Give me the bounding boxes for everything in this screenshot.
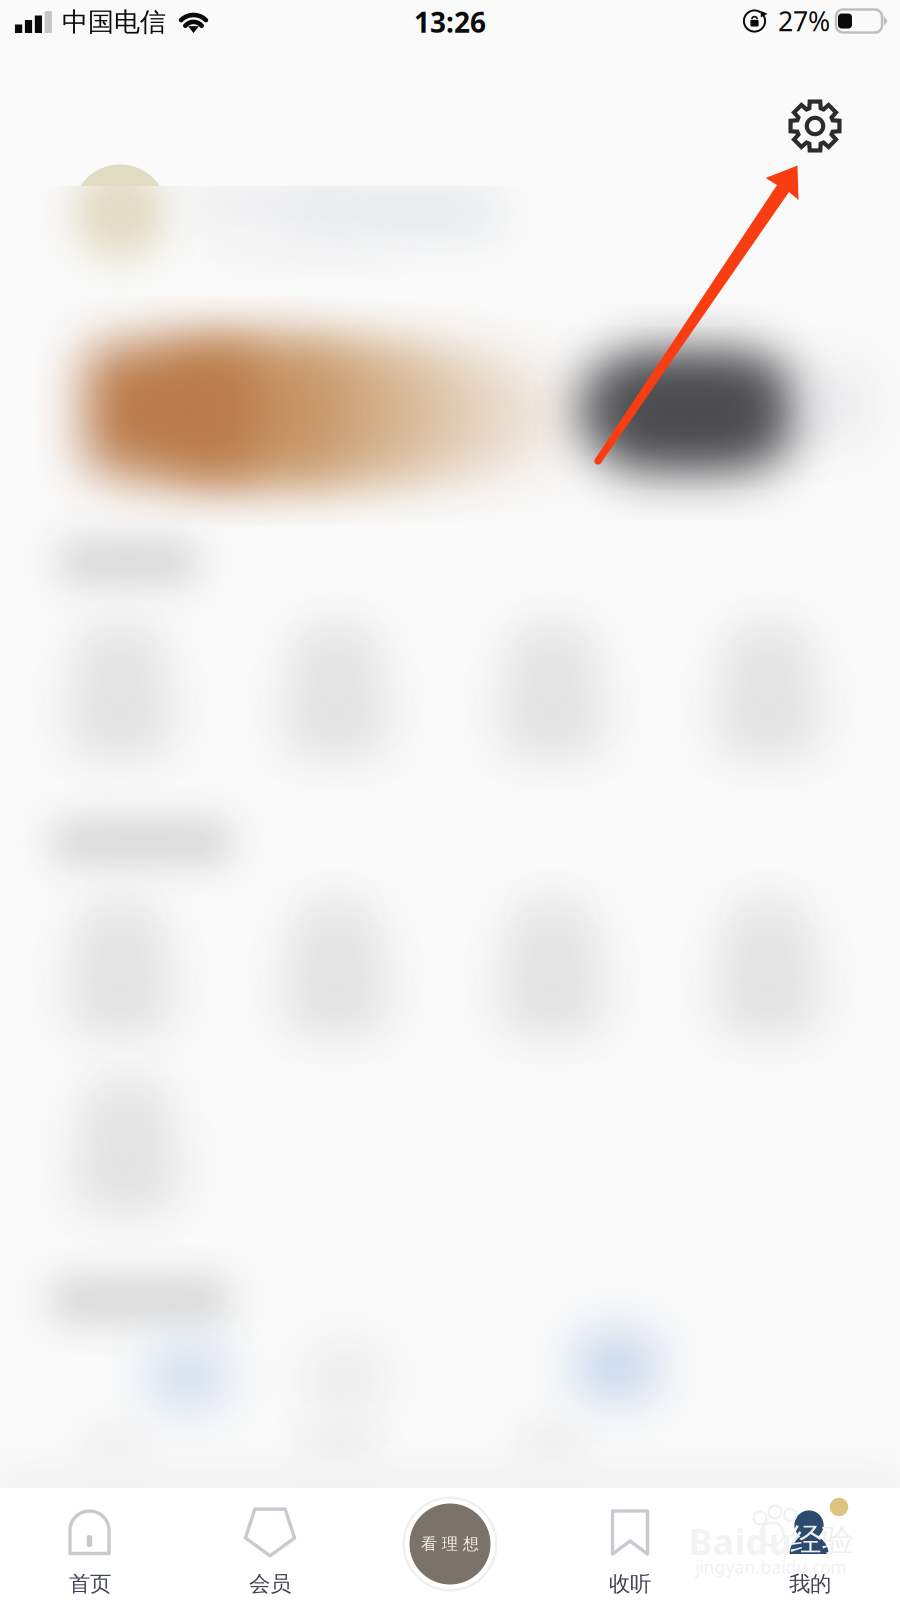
staticText: 13:26 [414, 3, 486, 41]
button[interactable]: 收听 [540, 1488, 720, 1600]
button[interactable]: 设置 [0, 0, 900, 1600]
staticText: 中国电信 [62, 6, 166, 38]
staticText: 27% [778, 3, 830, 39]
button[interactable]: 会员 [180, 1488, 360, 1600]
staticText: 经验 [790, 1520, 854, 1560]
button[interactable]: 我的 [720, 1488, 900, 1600]
staticText: 收听 [609, 1571, 651, 1597]
button[interactable]: 看理想 [360, 1488, 540, 1600]
staticText: 我的 [789, 1571, 831, 1597]
staticText: 看 理 想 [421, 1534, 479, 1554]
staticText: 首页 [69, 1571, 111, 1597]
staticText: jingyan.baidu.com [695, 1555, 846, 1579]
staticText: 会员 [249, 1571, 291, 1597]
button[interactable]: 首页 [0, 1488, 180, 1600]
staticText: Baidu [688, 1516, 791, 1565]
